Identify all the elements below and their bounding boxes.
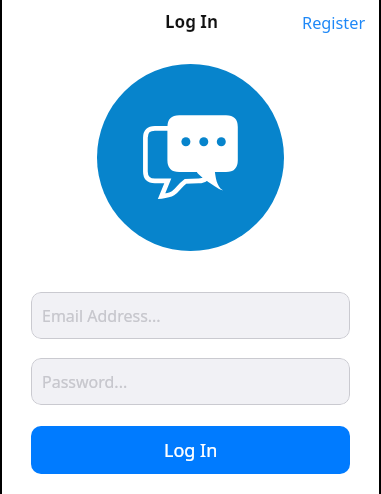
staticText: Log In xyxy=(164,438,218,463)
staticText: Register xyxy=(302,12,366,34)
button[interactable]: Email Address... xyxy=(31,292,350,339)
button[interactable]: Password... xyxy=(31,358,350,405)
staticText: Password... xyxy=(42,371,128,393)
staticText: Log In xyxy=(165,10,218,33)
button[interactable]: Register xyxy=(286,6,381,40)
button[interactable]: Log In xyxy=(31,426,350,474)
staticText: Email Address... xyxy=(42,305,161,327)
